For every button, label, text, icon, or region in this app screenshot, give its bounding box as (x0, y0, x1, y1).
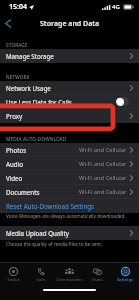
staticText: MEDIA AUTO-DOWNLOAD (6, 136, 67, 142)
button[interactable]: Photos (0, 143, 139, 157)
staticText: Status (7, 277, 20, 283)
staticText: Use Less Data for Calls (6, 98, 72, 106)
staticText: 15:04 (9, 2, 27, 12)
button[interactable]: Settings (111, 267, 139, 283)
button[interactable]: Communities (55, 267, 83, 283)
button[interactable]: Network Usage (0, 81, 139, 95)
staticText: Chats (91, 277, 103, 283)
button[interactable]: Status (0, 267, 27, 283)
staticText: Wi-Fi and Cellular (79, 174, 127, 182)
button[interactable]: Proxy (0, 109, 139, 123)
staticText: Communities (56, 277, 83, 283)
staticText: NETWORK (6, 74, 30, 80)
staticText: Photos (6, 146, 27, 154)
button[interactable]: Manage Storage (0, 49, 139, 63)
button[interactable]: Reset Auto-Download Settings (0, 199, 139, 213)
button[interactable]: Video (0, 171, 139, 185)
staticText: 4G (112, 3, 120, 11)
staticText: Wi-Fi and Cellular (79, 188, 127, 196)
button[interactable]: Use Less Data for Calls (0, 95, 139, 109)
button[interactable]: Chats (83, 267, 111, 283)
staticText: Audio (6, 160, 23, 168)
staticText: Proxy (6, 112, 23, 120)
button[interactable]: Calls (27, 267, 55, 283)
staticText: STORAGE (6, 42, 28, 48)
button[interactable]: Media Upload Quality (0, 226, 139, 240)
staticText: Settings (117, 277, 133, 283)
staticText: Documents (6, 188, 40, 196)
staticText: Manage Storage (6, 52, 54, 60)
staticText: Reset Auto-Download Settings (6, 202, 94, 210)
staticText: Wi-Fi and Cellular (79, 160, 127, 168)
staticText: Media Upload Quality (6, 229, 69, 237)
staticText: Wi-Fi and Cellular (79, 146, 127, 154)
button[interactable]: Back (0, 14, 16, 33)
staticText: Calls (36, 277, 46, 283)
staticText: Voice Messages are always automatically … (6, 213, 126, 219)
staticText: Network Usage (6, 84, 51, 92)
button[interactable]: Documents (0, 185, 139, 199)
staticText: Video (6, 174, 23, 182)
button[interactable]: Audio (0, 157, 139, 171)
staticText: Choose the quality of media files to be … (6, 241, 103, 247)
staticText: Storage and Data (40, 19, 100, 29)
